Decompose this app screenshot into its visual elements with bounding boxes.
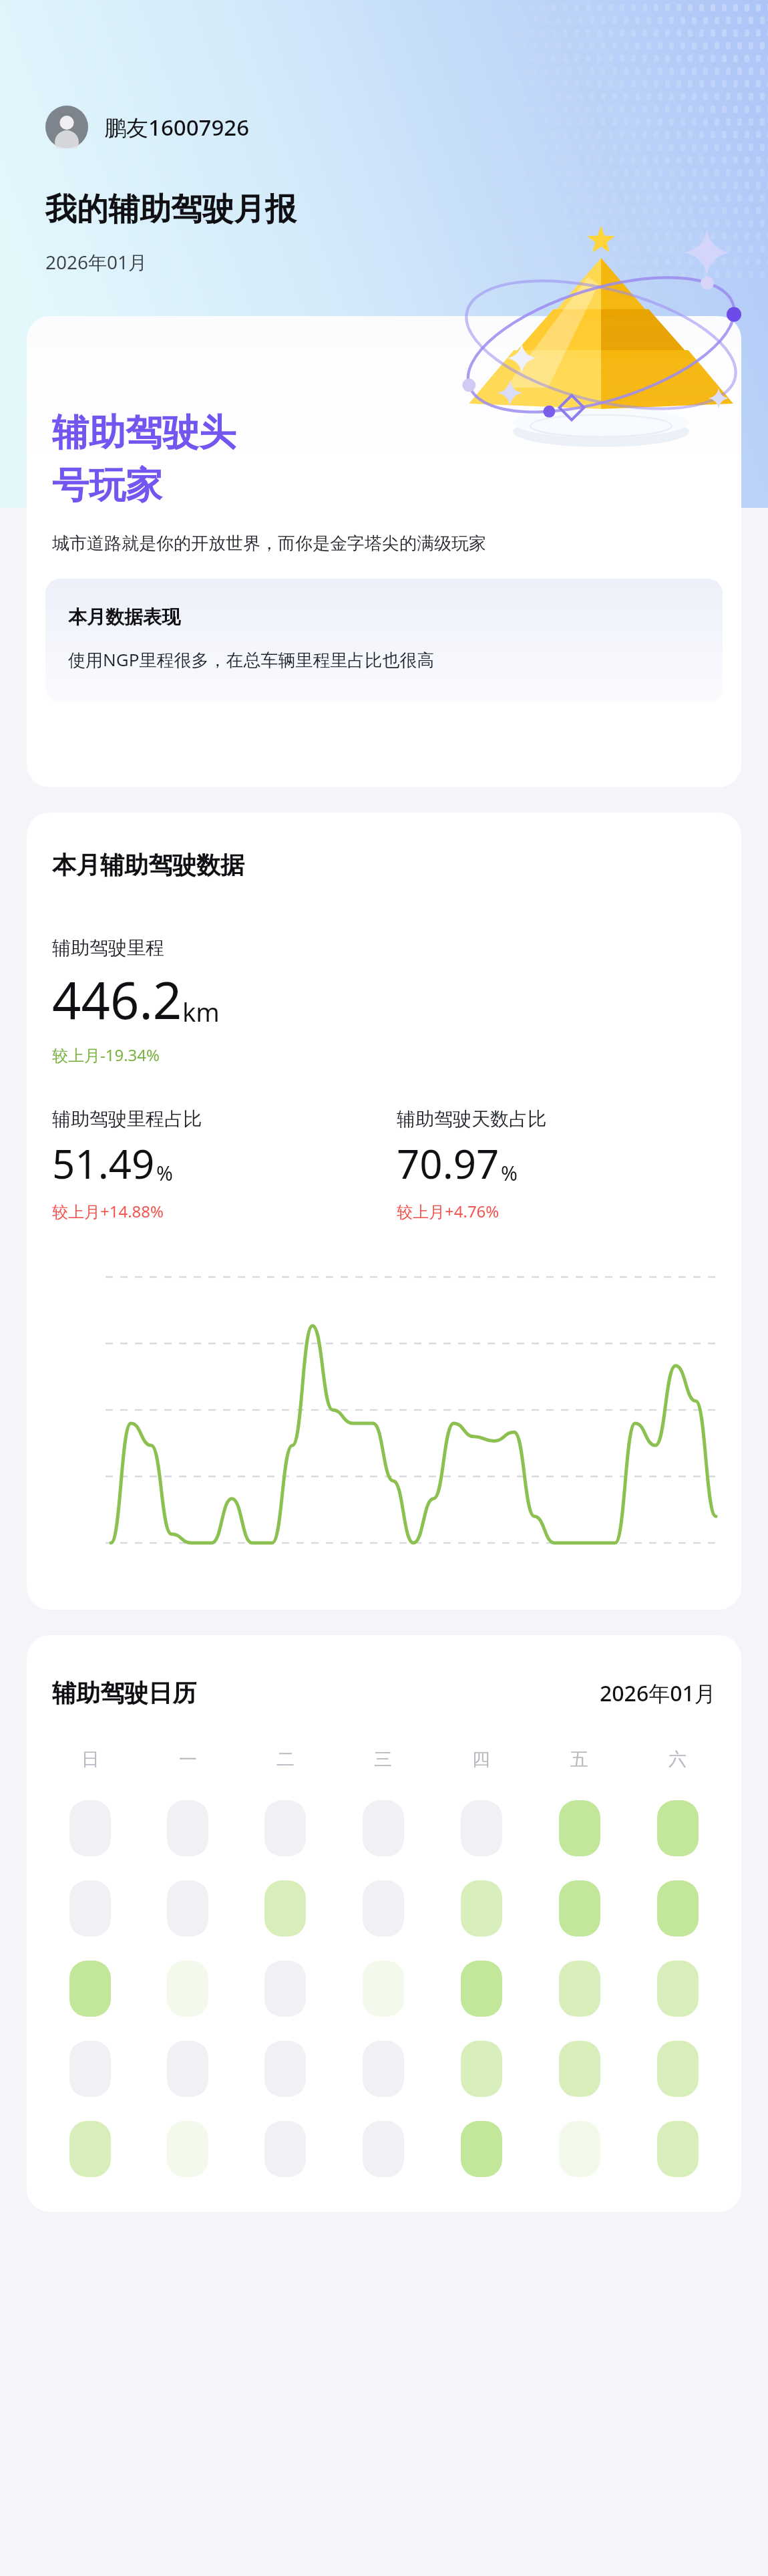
button[interactable] xyxy=(657,2041,699,2097)
button[interactable] xyxy=(363,1961,404,2017)
staticText: 2026年01月 xyxy=(45,249,148,275)
button[interactable] xyxy=(69,1800,111,1856)
button[interactable]: 辅助驾驶日历 xyxy=(27,1635,741,2212)
staticText: 四 xyxy=(472,1748,490,1771)
staticText: 较上月+4.76% xyxy=(397,1200,500,1222)
button[interactable] xyxy=(559,2121,600,2177)
staticText: % xyxy=(156,1159,173,1187)
staticText: 较上月-19.34% xyxy=(52,1044,160,1066)
staticText: 我的辅助驾驶月报 xyxy=(45,190,297,229)
staticText: 446.2 xyxy=(52,965,182,1034)
staticText: 辅助驾驶里程占比 xyxy=(52,1107,202,1131)
staticText: 较上月+14.88% xyxy=(52,1200,164,1222)
button[interactable] xyxy=(264,1880,306,1937)
staticText: 五 xyxy=(570,1748,588,1771)
staticText: 三 xyxy=(374,1748,392,1771)
button[interactable] xyxy=(264,2121,306,2177)
button[interactable] xyxy=(363,2041,404,2097)
button[interactable] xyxy=(167,1800,208,1856)
staticText: 2026年01月 xyxy=(600,1679,716,1708)
button[interactable] xyxy=(657,1880,699,1937)
button[interactable] xyxy=(167,2041,208,2097)
button[interactable] xyxy=(657,1961,699,2017)
button[interactable] xyxy=(264,1800,306,1856)
staticText: 本月辅助驾驶数据 xyxy=(52,850,244,880)
staticText: 城市道路就是你的开放世界，而你是金字塔尖的满级玩家 xyxy=(52,533,486,555)
button[interactable] xyxy=(559,1800,600,1856)
staticText: 本月数据表现 xyxy=(68,605,180,629)
button[interactable] xyxy=(69,2041,111,2097)
button[interactable] xyxy=(363,2121,404,2177)
staticText: % xyxy=(501,1159,518,1187)
button[interactable] xyxy=(559,2041,600,2097)
staticText: 70.97 xyxy=(397,1136,500,1191)
staticText: 二 xyxy=(276,1748,295,1771)
button[interactable]: 本月辅助驾驶数据 xyxy=(27,813,741,1610)
button[interactable] xyxy=(69,1880,111,1937)
button[interactable] xyxy=(461,1880,502,1937)
button[interactable] xyxy=(657,2121,699,2177)
button[interactable] xyxy=(167,1880,208,1937)
button[interactable] xyxy=(363,1800,404,1856)
staticText: 51.49 xyxy=(52,1136,155,1191)
button[interactable]: 辅助驾驶头 xyxy=(27,316,741,787)
staticText: km xyxy=(182,994,220,1029)
button[interactable] xyxy=(657,1800,699,1856)
button[interactable] xyxy=(559,1880,600,1937)
button[interactable]: 辅助驾驶天数占比 xyxy=(397,1107,741,1222)
button[interactable] xyxy=(461,2041,502,2097)
button[interactable]: 本月数据表现 xyxy=(45,579,723,702)
button[interactable]: 辅助驾驶里程占比 xyxy=(52,1107,397,1222)
staticText: 使用NGP里程很多，在总车辆里程里占比也很高 xyxy=(68,648,435,672)
button[interactable] xyxy=(167,2121,208,2177)
button[interactable] xyxy=(264,2041,306,2097)
button[interactable] xyxy=(461,1800,502,1856)
button[interactable] xyxy=(559,1961,600,2017)
button[interactable] xyxy=(264,1961,306,2017)
staticText: 鹏友16007926 xyxy=(104,112,250,142)
button[interactable] xyxy=(363,1880,404,1937)
staticText: 号玩家 xyxy=(52,462,162,509)
staticText: 辅助驾驶头 xyxy=(52,410,236,456)
staticText: 辅助驾驶天数占比 xyxy=(397,1107,546,1131)
button[interactable] xyxy=(461,2121,502,2177)
staticText: 日 xyxy=(81,1748,100,1771)
staticText: 辅助驾驶日历 xyxy=(52,1678,196,1708)
button[interactable] xyxy=(167,1961,208,2017)
button[interactable]: 鹏友16007926 xyxy=(45,106,250,148)
staticText: 六 xyxy=(668,1748,687,1771)
button[interactable] xyxy=(69,1961,111,2017)
button[interactable] xyxy=(69,2121,111,2177)
staticText: 一 xyxy=(179,1748,197,1771)
button[interactable] xyxy=(461,1961,502,2017)
staticText: 辅助驾驶里程 xyxy=(52,936,164,960)
